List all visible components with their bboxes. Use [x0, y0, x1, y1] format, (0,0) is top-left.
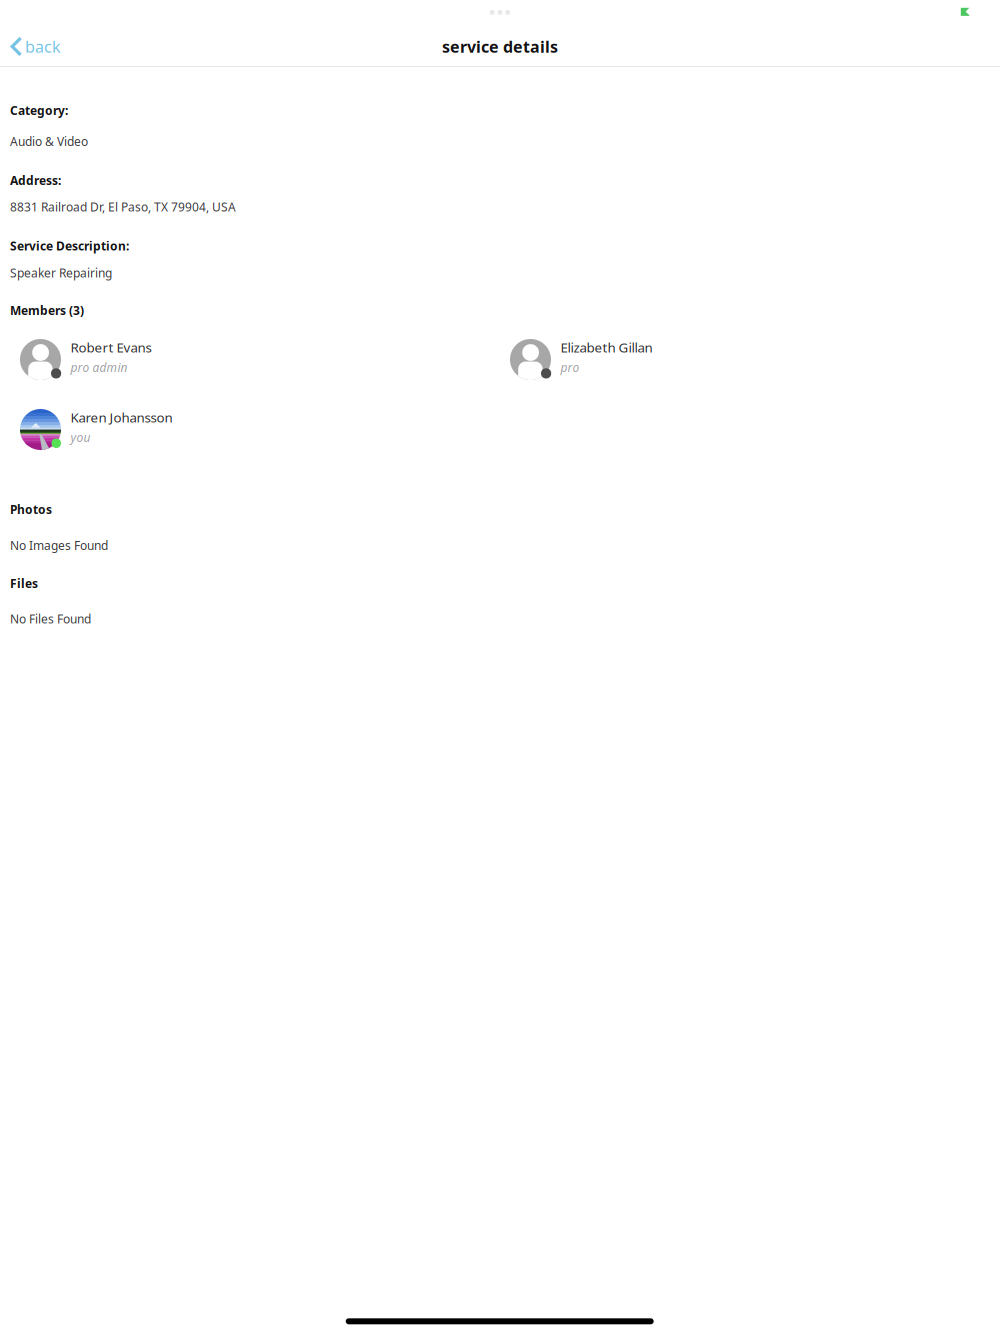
staticText: Category: [10, 102, 68, 118]
staticText: No Files Found [10, 611, 91, 627]
staticText: Members (3) [10, 302, 84, 318]
staticText: Karen Johansson [70, 408, 172, 426]
staticText: pro [560, 359, 579, 375]
staticText: Audio & Video [10, 133, 88, 149]
button[interactable]: Karen Johansson [20, 409, 320, 451]
staticText: Files [10, 575, 38, 591]
button[interactable]: Robert Evans [20, 339, 320, 381]
staticText: Service Description: [10, 238, 129, 254]
staticText: Photos [10, 501, 52, 517]
staticText: 8831 Railroad Dr, El Paso, TX 79904, USA [10, 199, 236, 215]
button[interactable]: Back [10, 24, 80, 68]
staticText: Elizabeth Gillan [560, 338, 652, 356]
button[interactable]: Elizabeth Gillan [510, 339, 810, 381]
staticText: service details [442, 36, 558, 57]
staticText: Address: [10, 172, 61, 188]
staticText: No Images Found [10, 537, 108, 553]
staticText: you [70, 429, 90, 445]
staticText: Speaker Repairing [10, 265, 112, 281]
staticText: Robert Evans [70, 338, 151, 356]
staticText: back [25, 36, 61, 57]
staticText: pro admin [70, 359, 127, 375]
